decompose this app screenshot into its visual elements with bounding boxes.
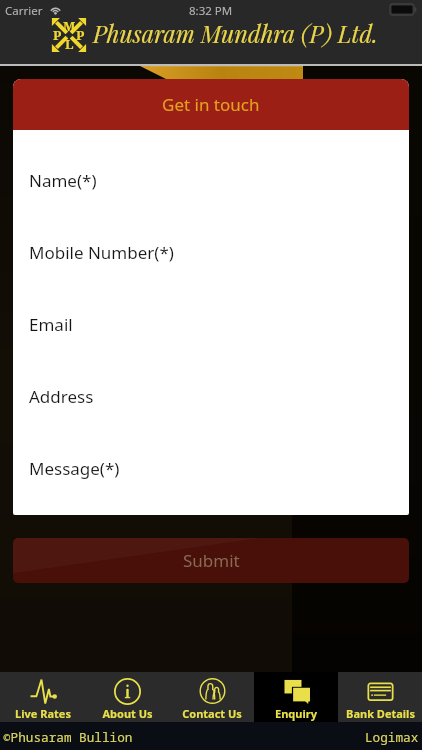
staticText: Message(*) bbox=[29, 457, 120, 480]
staticText: Name(*) bbox=[29, 169, 97, 192]
staticText: Contact Us bbox=[182, 706, 242, 721]
staticText: P bbox=[76, 26, 85, 44]
staticText: Bank Details bbox=[346, 706, 415, 721]
staticText: ©Phusaram Bullion bbox=[3, 728, 133, 745]
staticText: Logimax bbox=[365, 728, 419, 745]
button[interactable]: Enquiry bbox=[254, 672, 338, 722]
button[interactable]: Submit bbox=[13, 538, 409, 583]
button[interactable]: Live Rates bbox=[0, 672, 85, 722]
button[interactable]: Address bbox=[13, 360, 409, 432]
button[interactable]: Email bbox=[13, 288, 409, 360]
staticText: P bbox=[53, 26, 62, 44]
button[interactable]: About Us bbox=[85, 672, 170, 722]
staticText: Submit bbox=[183, 549, 240, 572]
button[interactable]: Bank Details bbox=[338, 672, 422, 722]
staticText: Phusaram Mundhra (P) Ltd. bbox=[93, 18, 378, 49]
staticText: 8:32 PM bbox=[189, 3, 233, 19]
staticText: M bbox=[63, 17, 76, 35]
staticText: Address bbox=[29, 385, 94, 408]
button[interactable]: Message(*) bbox=[13, 432, 409, 504]
staticText: Mobile Number(*) bbox=[29, 241, 174, 264]
staticText: Email bbox=[29, 313, 73, 336]
button[interactable]: Name(*) bbox=[13, 144, 409, 216]
staticText: Carrier bbox=[5, 3, 43, 19]
staticText: Enquiry bbox=[275, 706, 317, 721]
button[interactable]: Mobile Number(*) bbox=[13, 216, 409, 288]
staticText: Live Rates bbox=[15, 706, 71, 721]
button[interactable]: Contact Us bbox=[170, 672, 254, 722]
staticText: L bbox=[65, 35, 74, 53]
staticText: About Us bbox=[102, 706, 153, 721]
staticText: Get in touch bbox=[162, 93, 260, 116]
